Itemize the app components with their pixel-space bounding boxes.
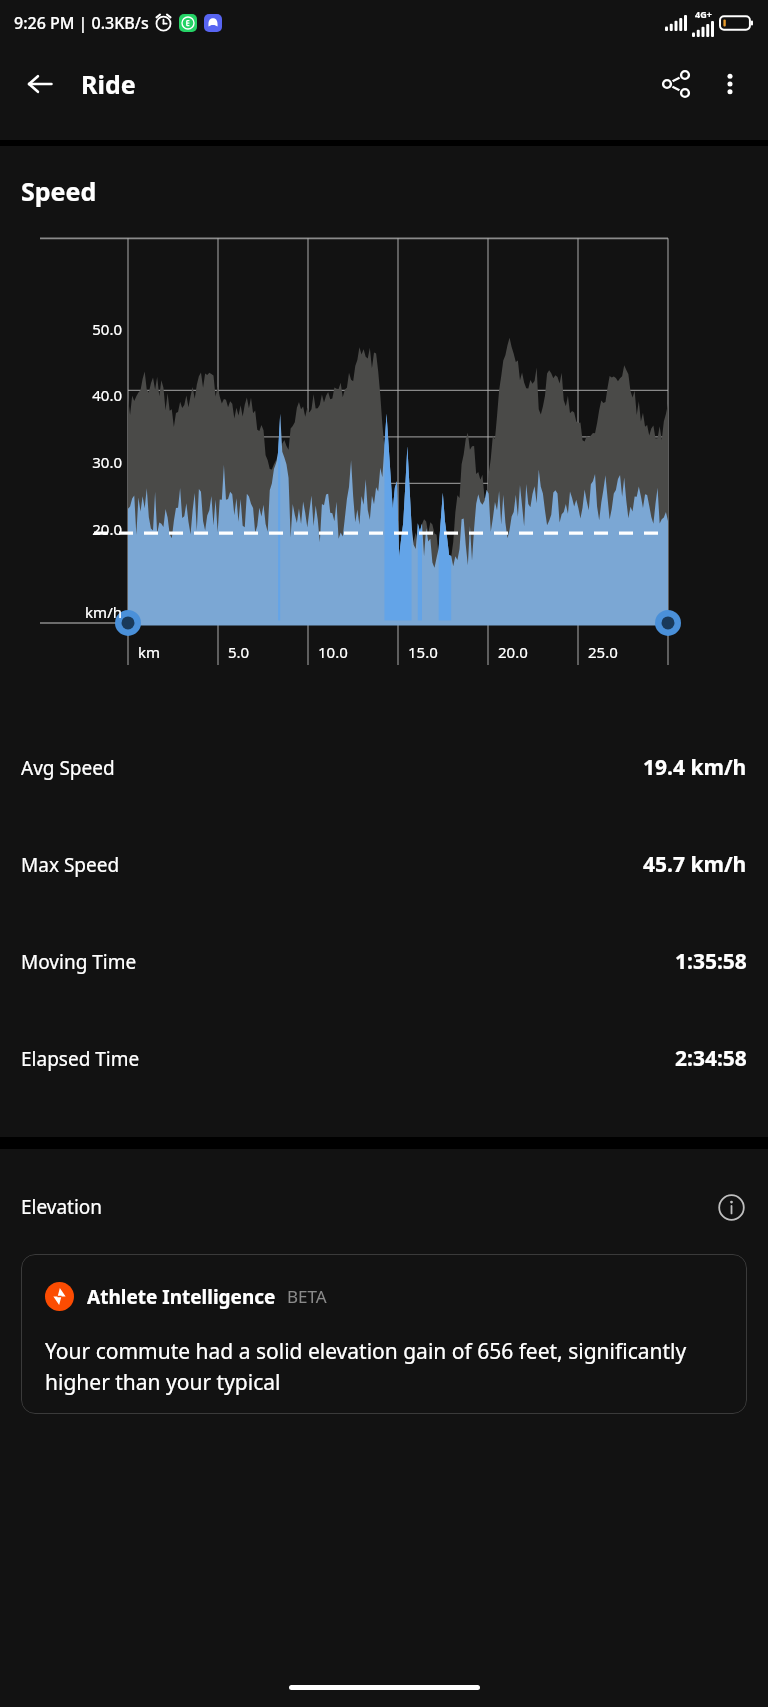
staticText: Ride <box>81 67 136 101</box>
staticText: 19.4 km/h <box>643 753 747 782</box>
staticText: 20.0 <box>80 519 122 539</box>
button[interactable]: Avg Speed <box>0 719 768 816</box>
staticText: Elapsed Time <box>21 1046 140 1072</box>
staticText: km/h <box>72 602 122 622</box>
button[interactable]: Moving Time <box>0 913 768 1010</box>
staticText: km <box>138 642 161 662</box>
staticText: Speed <box>21 174 97 208</box>
staticText: 15.0 <box>408 642 438 662</box>
staticText: Athlete Intelligence <box>87 1284 276 1310</box>
staticText: 2:34:58 <box>675 1044 747 1073</box>
staticText: 50.0 <box>80 319 122 339</box>
button[interactable]: More options <box>704 58 756 110</box>
staticText: 45.7 km/h <box>643 850 747 879</box>
button[interactable]: Share <box>648 56 704 112</box>
staticText: Your commute had a solid elevation gain … <box>45 1337 729 1396</box>
staticText: Avg Speed <box>21 755 115 781</box>
staticText: 25.0 <box>588 642 618 662</box>
staticText: 4G+ <box>695 8 712 20</box>
button[interactable]: Info about elevation <box>715 1191 747 1223</box>
staticText: 9:26 PM | 0.3KB/s <box>14 12 149 34</box>
button[interactable]: Elapsed Time <box>0 1010 768 1107</box>
staticText: 30.0 <box>80 452 122 472</box>
staticText: Max Speed <box>21 852 120 878</box>
staticText: 1:35:58 <box>675 947 747 976</box>
button[interactable]: Athlete Intelligence <box>21 1254 747 1414</box>
staticText: 5.0 <box>228 642 250 662</box>
staticText: 10.0 <box>318 642 348 662</box>
staticText: BETA <box>287 1285 327 1308</box>
staticText: 40.0 <box>80 385 122 405</box>
staticText: Elevation <box>21 1194 103 1220</box>
staticText: Moving Time <box>21 949 137 975</box>
button[interactable]: Back <box>14 58 66 110</box>
button[interactable]: Max Speed <box>0 816 768 913</box>
staticText: 20.0 <box>498 642 528 662</box>
